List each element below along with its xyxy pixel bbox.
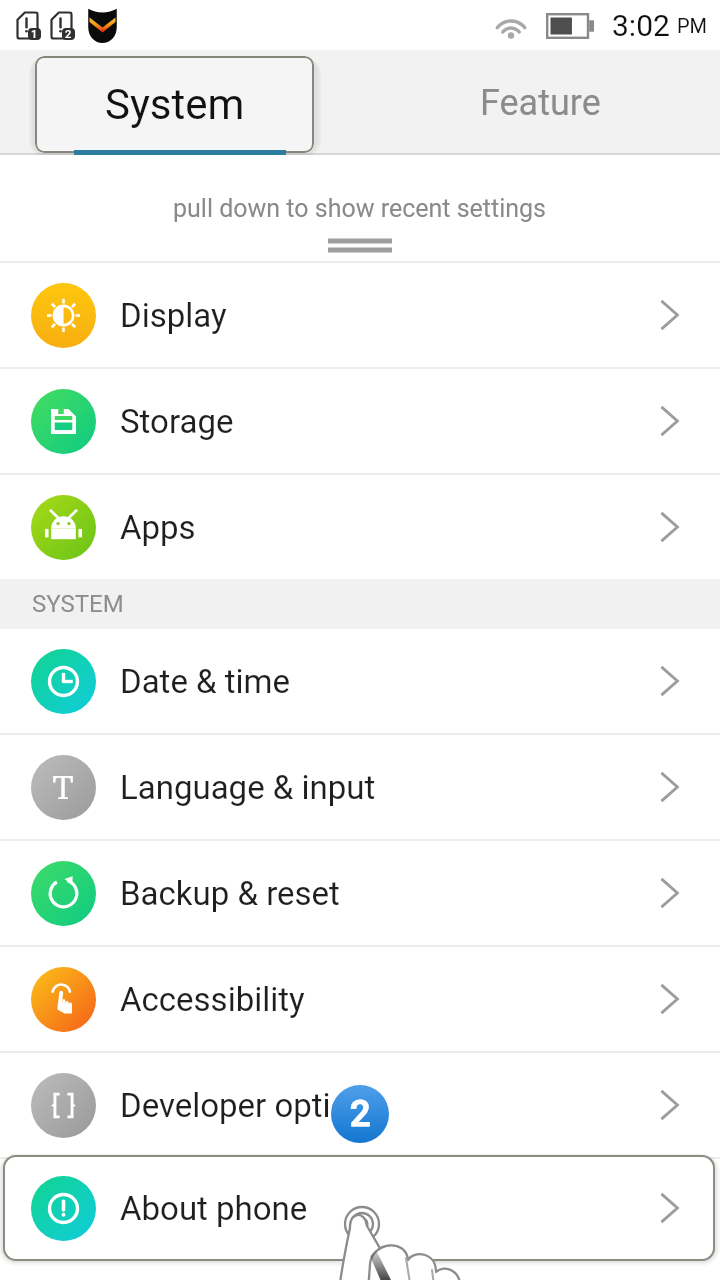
staticText: T	[52, 768, 75, 807]
staticText: Storage	[120, 402, 234, 441]
button[interactable]: Backup & reset	[0, 841, 720, 945]
button[interactable]: About phone	[0, 1156, 720, 1260]
staticText: pull down to show recent settings	[173, 194, 547, 223]
staticText: Developer options	[120, 1086, 385, 1125]
button[interactable]: T	[0, 735, 720, 839]
button[interactable]: Feature	[360, 50, 720, 155]
staticText: 3:02	[612, 8, 670, 43]
button[interactable]: Display	[0, 263, 720, 367]
staticText: System	[105, 80, 245, 129]
staticText: 2	[65, 28, 72, 40]
staticText: Date & time	[120, 662, 291, 701]
staticText: Feature	[480, 82, 601, 124]
button[interactable]: Apps	[0, 475, 720, 579]
staticText: SYSTEM	[32, 590, 124, 618]
staticText: Accessibility	[120, 980, 305, 1019]
staticText: 2	[350, 1093, 371, 1135]
staticText: Display	[120, 296, 227, 335]
staticText: Language & input	[120, 768, 376, 807]
staticText: 1	[31, 28, 38, 40]
button[interactable]: Developer options	[0, 1053, 720, 1157]
staticText: Apps	[120, 508, 196, 547]
button[interactable]: Storage	[0, 369, 720, 473]
staticText: About phone	[120, 1192, 308, 1231]
button[interactable]: About phone	[0, 1159, 720, 1263]
staticText: Backup & reset	[120, 874, 340, 913]
staticText: About phone	[120, 1189, 308, 1228]
button[interactable]: Accessibility	[0, 947, 720, 1051]
button[interactable]: System	[35, 56, 314, 153]
staticText: PM	[677, 14, 708, 37]
button[interactable]: Date & time	[0, 629, 720, 733]
